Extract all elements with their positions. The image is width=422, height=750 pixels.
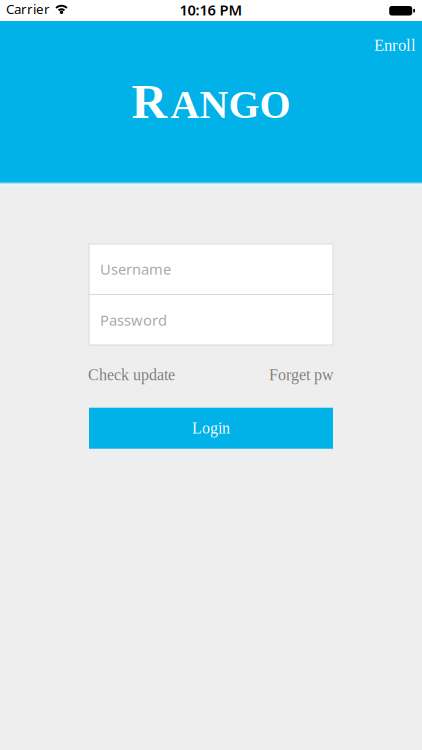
staticText: Login <box>192 419 230 437</box>
button[interactable]: Check update <box>88 366 175 384</box>
staticText: ANGO <box>170 82 290 127</box>
button[interactable]: Password <box>89 295 333 345</box>
staticText: Password <box>100 310 167 330</box>
button[interactable]: Username <box>89 244 333 294</box>
staticText: Carrier <box>6 0 50 18</box>
staticText: Enroll <box>374 36 416 54</box>
button[interactable]: Enroll <box>374 0 422 54</box>
button[interactable]: Forget pw <box>269 366 334 384</box>
staticText: Check update <box>88 366 175 384</box>
button[interactable]: Login <box>89 408 333 449</box>
staticText: 10:16 PM <box>179 0 242 19</box>
staticText: Username <box>100 259 171 279</box>
staticText: Forget pw <box>269 366 334 384</box>
staticText: R <box>131 74 167 129</box>
